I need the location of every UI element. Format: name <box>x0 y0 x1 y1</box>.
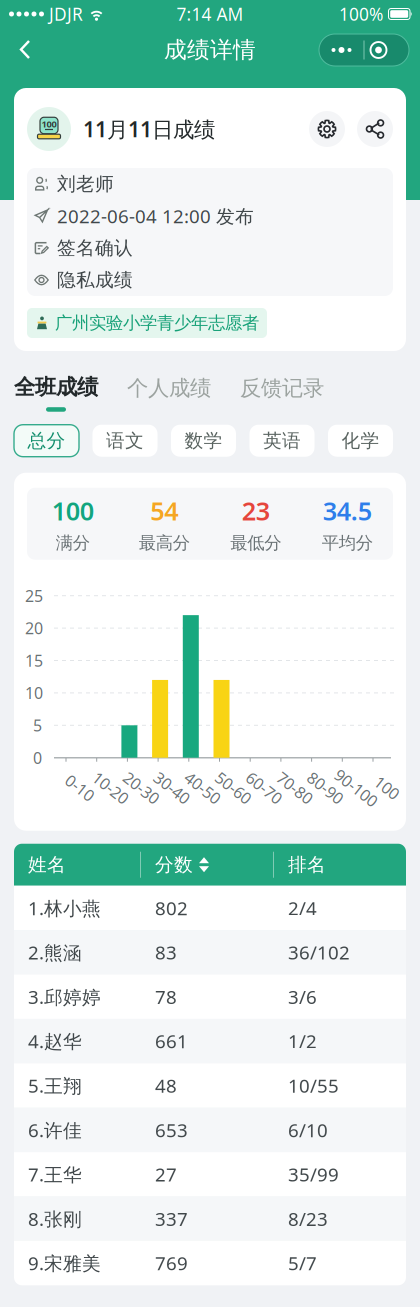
button[interactable]: 广州实验小学青少年志愿者 <box>27 308 267 338</box>
staticText: 70-80 <box>274 777 315 798</box>
staticText: 23 <box>242 494 270 527</box>
staticText: 653 <box>155 1117 188 1142</box>
staticText: 1.林小燕 <box>28 895 101 920</box>
staticText: 11月11日成绩 <box>83 115 215 143</box>
staticText: 54 <box>150 494 178 527</box>
staticText: 反馈记录 <box>240 375 324 401</box>
staticText: 隐私成绩 <box>57 268 133 291</box>
staticText: 语文 <box>106 429 144 452</box>
staticText: 最高分 <box>139 532 190 554</box>
staticText: 0 <box>33 747 42 768</box>
staticText: 10 <box>25 682 43 703</box>
staticText: 90-100 <box>331 777 381 798</box>
staticText: 10/55 <box>288 1073 339 1098</box>
staticText: 5 <box>33 715 42 736</box>
button[interactable]: 英语 <box>249 425 314 457</box>
button[interactable]: 全班成绩 <box>14 374 98 412</box>
staticText: 分数 <box>155 853 193 876</box>
button[interactable]: 数学 <box>171 425 236 457</box>
button[interactable]: 设置 <box>309 111 345 147</box>
staticText: 20-30 <box>121 777 162 798</box>
staticText: 36/102 <box>288 940 350 965</box>
staticText: 数学 <box>184 429 222 452</box>
staticText: 2/4 <box>288 895 317 920</box>
staticText: 2.熊涵 <box>28 940 82 965</box>
staticText: 0-10 <box>64 777 96 798</box>
staticText: 80-90 <box>305 777 346 798</box>
staticText: 4.赵华 <box>28 1029 82 1053</box>
staticText: 83 <box>155 940 177 965</box>
staticText: 20 <box>25 617 43 639</box>
staticText: 2022-06-04 12:00 发布 <box>57 204 254 228</box>
staticText: 8.张刚 <box>28 1206 82 1231</box>
staticText: 6.许佳 <box>28 1117 82 1142</box>
staticText: 337 <box>155 1206 188 1231</box>
staticText: 姓名 <box>28 853 66 876</box>
button[interactable]: 返回 <box>8 31 46 69</box>
staticText: 总分 <box>27 429 65 452</box>
staticText: 7:14 AM <box>176 2 243 25</box>
staticText: 3.邱婷婷 <box>28 984 101 1009</box>
staticText: 9.宋雅美 <box>28 1251 101 1275</box>
staticText: 化学 <box>341 429 379 452</box>
staticText: 签名确认 <box>57 236 133 259</box>
staticText: 100 <box>373 777 400 798</box>
staticText: 个人成绩 <box>127 375 211 401</box>
staticText: 661 <box>155 1029 188 1053</box>
staticText: 7.王华 <box>28 1162 82 1187</box>
staticText: 15 <box>25 650 43 671</box>
staticText: 25 <box>25 585 43 606</box>
staticText: 30-40 <box>152 777 193 798</box>
staticText: 英语 <box>263 429 301 452</box>
staticText: 100 <box>52 494 94 527</box>
staticText: 5/7 <box>288 1251 317 1275</box>
staticText: 27 <box>155 1162 177 1187</box>
button[interactable]: 按分数排序 <box>141 853 273 876</box>
staticText: 5.王翔 <box>28 1073 82 1098</box>
staticText: JDJR <box>44 2 88 25</box>
staticText: 平均分 <box>322 532 373 554</box>
button[interactable]: 反馈记录 <box>240 374 324 401</box>
staticText: 成绩详情 <box>164 36 256 64</box>
staticText: 排名 <box>288 853 326 876</box>
staticText: 50-60 <box>213 777 254 798</box>
staticText: 10-20 <box>90 777 131 798</box>
button[interactable]: 分享 <box>357 111 393 147</box>
button[interactable]: 化学 <box>328 425 393 457</box>
staticText: 全班成绩 <box>14 374 98 400</box>
button[interactable]: 总分 <box>14 425 79 457</box>
staticText: 802 <box>155 895 188 920</box>
button[interactable]: 个人成绩 <box>127 374 211 401</box>
staticText: 6/10 <box>288 1117 328 1142</box>
staticText: 最低分 <box>230 532 281 554</box>
staticText: 广州实验小学青少年志愿者 <box>55 312 259 334</box>
staticText: 1/2 <box>288 1029 317 1053</box>
staticText: 满分 <box>56 532 90 554</box>
staticText: 刘老师 <box>57 172 114 195</box>
button[interactable]: 关闭小程序 <box>364 34 408 66</box>
staticText: 60-70 <box>244 777 285 798</box>
button[interactable]: 更多 <box>319 34 363 66</box>
staticText: 769 <box>155 1251 188 1275</box>
staticText: 40-50 <box>182 777 223 798</box>
button[interactable]: 语文 <box>92 425 157 457</box>
staticText: 100 <box>41 118 56 130</box>
staticText: 100% <box>339 2 388 25</box>
staticText: 8/23 <box>288 1206 328 1231</box>
staticText: 78 <box>155 984 177 1009</box>
staticText: 3/6 <box>288 984 317 1009</box>
staticText: 35/99 <box>288 1162 339 1187</box>
staticText: 34.5 <box>323 494 372 527</box>
staticText: 48 <box>155 1073 177 1098</box>
